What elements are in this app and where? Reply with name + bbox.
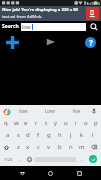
button[interactable]: a [3,129,13,141]
button[interactable]: Home [44,167,57,180]
staticText: r [35,119,38,127]
button[interactable]: h [54,129,65,141]
staticText: live [73,108,81,114]
staticText: 10:35 [91,1,100,6]
button[interactable]: o [81,117,91,129]
button[interactable]: Emoji [25,153,34,165]
button[interactable]: love [21,23,86,31]
button[interactable]: Backspace [87,141,101,153]
staticText: Love [45,108,55,114]
button[interactable]: Voice input [90,107,98,115]
button[interactable]: l [87,129,98,141]
staticText: y [54,119,58,127]
staticText: f [37,131,40,139]
button[interactable]: m [76,141,87,153]
staticText: l [92,131,94,139]
button[interactable]: Add [4,34,20,50]
button[interactable]: g [43,129,54,141]
staticText: Search [2,23,19,30]
button[interactable]: y [51,117,61,129]
button[interactable]: Nice job! You're displaying a 320 x 50 [0,6,101,21]
staticText: , [20,156,22,163]
button[interactable]: Google [3,108,10,115]
button[interactable]: Shift [0,141,13,153]
button[interactable]: r [31,117,41,129]
staticText: k [80,131,84,139]
staticText: . [81,156,83,163]
staticText: h [58,131,62,139]
staticText: ? [89,37,93,48]
button[interactable]: d [23,129,33,141]
button[interactable]: Help [82,34,98,50]
staticText: i [75,119,77,127]
staticText: q [4,119,8,127]
button[interactable]: Search [88,21,99,32]
button[interactable]: , [16,153,25,165]
staticText: c [37,143,40,151]
button[interactable]: f [33,129,43,141]
button[interactable]: love [10,105,36,117]
staticText: v [47,143,51,151]
staticText: ?123 [4,157,13,162]
button[interactable]: ?123 [1,153,16,165]
button[interactable]: Recents [73,167,86,180]
staticText: p [94,119,98,127]
button[interactable]: Love [36,105,63,117]
button[interactable]: z [13,141,23,153]
staticText: z [17,143,20,151]
staticText: u [64,119,68,127]
button[interactable]: live [63,105,90,117]
button[interactable]: c [33,141,43,153]
button[interactable]: u [61,117,71,129]
button[interactable]: w [11,117,21,129]
button[interactable]: n [65,141,76,153]
button[interactable]: t [41,117,51,129]
staticText: d [26,131,30,139]
button[interactable]: Back [16,167,29,180]
staticText: love [19,108,28,114]
staticText: m [79,143,85,151]
staticText: love [22,24,31,30]
staticText: w [14,119,19,127]
button[interactable]: q [0,117,11,129]
other: AdMob [86,7,99,20]
button[interactable]: s [13,129,23,141]
button[interactable]: k [76,129,87,141]
staticText: g [47,131,51,139]
staticText: o [84,119,88,127]
staticText: a [6,131,10,139]
button[interactable]: Enter [86,153,100,165]
staticText: j [70,131,72,139]
staticText: test ad from AdMob. [2,14,43,20]
staticText: t [45,119,48,127]
button[interactable]: p [91,117,101,129]
staticText: n [69,143,73,151]
staticText: e [24,119,28,127]
button[interactable]: x [23,141,33,153]
button[interactable]: j [65,129,76,141]
button[interactable]: e [21,117,31,129]
staticText: x [26,143,30,151]
staticText: b [58,143,62,151]
button[interactable]: Play [43,34,59,50]
button[interactable]: i [71,117,81,129]
button[interactable]: . [77,153,86,165]
button[interactable]: v [43,141,54,153]
staticText: Nice job! You're displaying a 320 x 50 [2,7,78,13]
button[interactable]: b [54,141,65,153]
staticText: s [17,131,20,139]
